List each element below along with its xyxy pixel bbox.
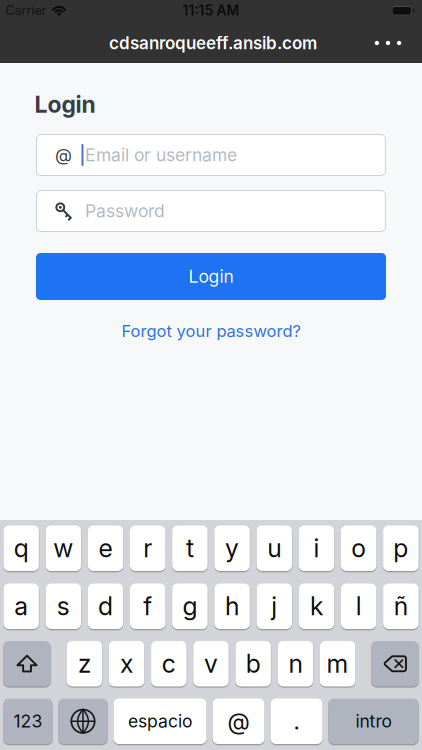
staticText: ñ xyxy=(394,591,408,621)
button[interactable]: @ xyxy=(36,134,386,176)
button[interactable]: y xyxy=(214,525,250,571)
staticText: s xyxy=(57,591,70,621)
staticText: q xyxy=(14,533,29,563)
staticText: cdsanroqueeff.ansib.com xyxy=(109,33,317,53)
button[interactable]: espacio xyxy=(113,698,206,744)
button[interactable]: r xyxy=(130,525,165,571)
button[interactable] xyxy=(58,698,107,744)
button[interactable]: s xyxy=(46,583,81,629)
button[interactable]: Password xyxy=(36,190,386,232)
button[interactable]: q xyxy=(3,525,39,571)
button[interactable]: ñ xyxy=(383,583,418,629)
staticText: e xyxy=(98,533,112,563)
staticText: @ xyxy=(227,707,249,735)
staticText: 123 xyxy=(13,711,42,732)
staticText: p xyxy=(393,533,408,563)
staticText: i xyxy=(313,533,319,563)
staticText: 11:15 AM xyxy=(182,2,239,19)
staticText: w xyxy=(53,533,73,563)
staticText: a xyxy=(14,591,28,621)
staticText: r xyxy=(143,533,152,563)
button[interactable] xyxy=(3,641,51,686)
staticText: d xyxy=(98,591,113,621)
button[interactable]: @ xyxy=(212,698,264,744)
button[interactable]: t xyxy=(172,525,208,571)
staticText: Forgot your password? xyxy=(121,321,300,341)
button[interactable]: o xyxy=(341,525,376,571)
button[interactable] xyxy=(375,41,401,45)
staticText: Email or username xyxy=(85,144,237,166)
staticText: m xyxy=(327,649,349,679)
button[interactable]: x xyxy=(109,641,144,686)
button[interactable]: l xyxy=(341,583,376,629)
staticText: Login xyxy=(34,91,95,118)
button[interactable]: . xyxy=(270,698,322,744)
staticText: @ xyxy=(55,144,72,166)
staticText: . xyxy=(293,707,299,735)
button[interactable]: m xyxy=(320,641,355,686)
button[interactable]: v xyxy=(193,641,229,686)
button[interactable]: Login xyxy=(36,253,386,300)
button[interactable]: d xyxy=(88,583,123,629)
staticText: Login xyxy=(188,266,233,287)
staticText: h xyxy=(225,591,239,621)
button[interactable]: a xyxy=(3,583,39,629)
button[interactable]: 123 xyxy=(3,698,52,744)
staticText: Password xyxy=(85,200,165,222)
staticText: f xyxy=(143,591,152,621)
button[interactable]: intro xyxy=(328,698,418,744)
button[interactable]: u xyxy=(257,525,292,571)
button[interactable]: b xyxy=(235,641,271,686)
staticText: b xyxy=(246,649,261,679)
staticText: c xyxy=(162,649,176,679)
staticText: y xyxy=(225,533,239,563)
button[interactable]: j xyxy=(257,583,292,629)
button[interactable]: n xyxy=(278,641,313,686)
button[interactable]: p xyxy=(383,525,418,571)
staticText: v xyxy=(204,649,218,679)
staticText: j xyxy=(271,591,277,621)
button[interactable]: c xyxy=(151,641,186,686)
staticText: espacio xyxy=(128,711,192,732)
button[interactable]: w xyxy=(46,525,81,571)
button[interactable]: h xyxy=(214,583,250,629)
staticText: o xyxy=(351,533,366,563)
button[interactable] xyxy=(371,641,418,686)
button[interactable]: k xyxy=(299,583,334,629)
staticText: z xyxy=(78,649,91,679)
button[interactable]: e xyxy=(88,525,123,571)
staticText: l xyxy=(356,591,362,621)
button[interactable]: z xyxy=(67,641,102,686)
staticText: intro xyxy=(355,711,391,732)
staticText: t xyxy=(186,533,194,563)
staticText: n xyxy=(288,649,302,679)
staticText: k xyxy=(310,591,323,621)
button[interactable]: Forgot your password? xyxy=(121,321,300,341)
button[interactable]: f xyxy=(130,583,165,629)
staticText: g xyxy=(182,591,197,621)
button[interactable]: i xyxy=(299,525,334,571)
staticText: Carrier xyxy=(5,3,46,18)
staticText: x xyxy=(120,649,133,679)
staticText: u xyxy=(267,533,281,563)
button[interactable]: g xyxy=(172,583,208,629)
